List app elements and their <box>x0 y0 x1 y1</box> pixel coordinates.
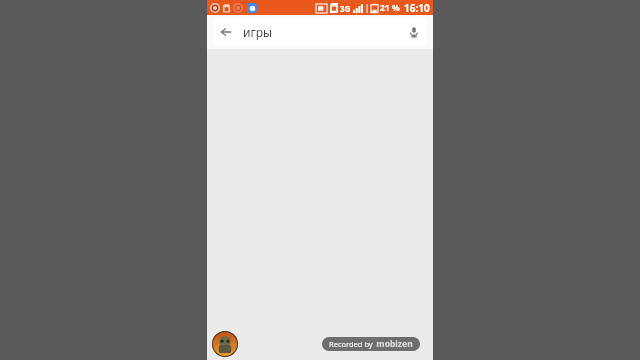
staticText: игры <box>243 24 273 40</box>
button[interactable]: Back <box>213 19 427 45</box>
button[interactable]: Voice search <box>401 19 427 45</box>
staticText: 3G <box>340 3 351 14</box>
button[interactable]: Recording avatar <box>212 331 238 357</box>
staticText: mobizen <box>376 338 413 350</box>
staticText: 16:10 <box>404 1 430 15</box>
staticText: Recorded by <box>329 339 373 349</box>
button[interactable]: Back <box>213 19 239 45</box>
staticText: 21 % <box>380 2 400 14</box>
